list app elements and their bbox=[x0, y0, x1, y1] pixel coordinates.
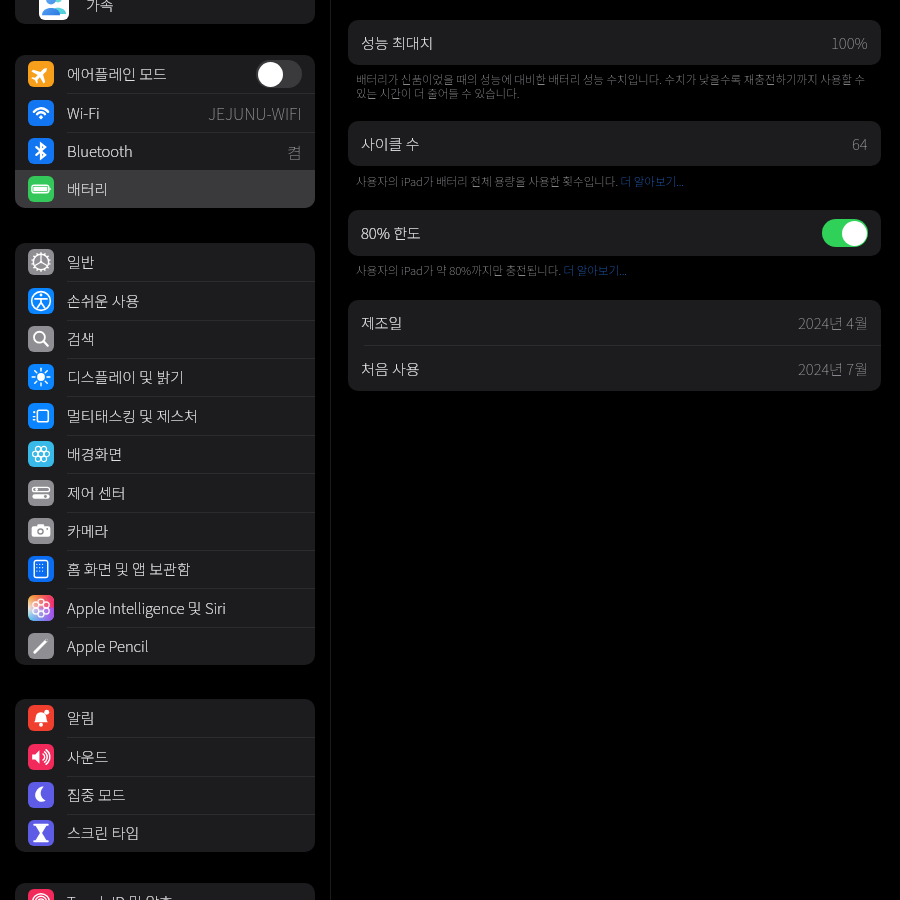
staticText: 멀티태스킹 및 제스처 bbox=[67, 405, 198, 427]
staticText: 집중 모드 bbox=[67, 784, 126, 806]
staticText: 가족 bbox=[86, 0, 114, 16]
staticText: 사이클 수 bbox=[361, 133, 420, 155]
button[interactable]: 80% 한도 bbox=[348, 210, 881, 256]
staticText: 64 bbox=[852, 133, 868, 155]
button[interactable]: 일반 bbox=[15, 243, 315, 281]
button[interactable]: 처음 사용 bbox=[348, 346, 881, 391]
staticText: 사용자의 iPad가 약 80%까지만 충전됩니다. 더 알아보기... bbox=[356, 262, 627, 279]
button[interactable]: 에어플레인 모드 bbox=[15, 55, 315, 93]
staticText: 검색 bbox=[67, 328, 95, 350]
staticText: 에어플레인 모드 bbox=[67, 63, 167, 85]
staticText: Bluetooth bbox=[67, 140, 133, 162]
button[interactable]: 멀티태스킹 및 제스처 bbox=[15, 396, 315, 435]
button[interactable]: 알림 bbox=[15, 699, 315, 737]
staticText: Wi-Fi bbox=[67, 102, 100, 124]
staticText: Apple Pencil bbox=[67, 635, 149, 657]
staticText: 사용자의 iPad가 배터리 전체 용량을 사용한 횟수입니다. 더 알아보기.… bbox=[356, 173, 685, 190]
staticText: Touch ID 및 암호 bbox=[67, 891, 174, 900]
button[interactable]: Off bbox=[256, 60, 302, 88]
button[interactable]: Bluetooth bbox=[15, 132, 315, 170]
button[interactable]: 제조일 bbox=[348, 300, 881, 345]
staticText: 배터리가 신품이었을 때의 성능에 대비한 배터리 성능 수치입니다. 수치가 … bbox=[356, 71, 876, 102]
staticText: 디스플레이 및 밝기 bbox=[67, 366, 185, 388]
button[interactable]: Wi-Fi bbox=[15, 93, 315, 132]
staticText: 알림 bbox=[67, 707, 95, 729]
staticText: 2024년 4월 bbox=[798, 312, 868, 334]
button[interactable]: 스크린 타임 bbox=[15, 814, 315, 852]
button[interactable]: 배터리 bbox=[15, 170, 315, 208]
staticText: 일반 bbox=[67, 251, 95, 273]
staticText: 켬 bbox=[287, 140, 302, 163]
button[interactable]: Touch ID 및 암호 bbox=[15, 883, 315, 900]
staticText: 홈 화면 및 앱 보관함 bbox=[67, 558, 191, 580]
button[interactable]: 성능 최대치 bbox=[348, 20, 881, 65]
button[interactable]: On bbox=[822, 219, 868, 247]
button[interactable]: Apple Pencil bbox=[15, 627, 315, 665]
button[interactable]: 집중 모드 bbox=[15, 776, 315, 814]
button[interactable]: 디스플레이 및 밝기 bbox=[15, 358, 315, 396]
staticText: Apple Intelligence 및 Siri bbox=[67, 597, 226, 619]
button[interactable]: 사이클 수 bbox=[348, 121, 881, 166]
staticText: 2024년 7월 bbox=[798, 358, 868, 380]
button[interactable]: 검색 bbox=[15, 320, 315, 358]
staticText: 제어 센터 bbox=[67, 482, 126, 504]
button[interactable]: 가족 bbox=[15, 0, 315, 24]
staticText: 배경화면 bbox=[67, 443, 123, 465]
staticText: 손쉬운 사용 bbox=[67, 290, 140, 312]
button[interactable]: 손쉬운 사용 bbox=[15, 281, 315, 320]
button[interactable]: 사운드 bbox=[15, 737, 315, 776]
staticText: 배터리 bbox=[67, 178, 109, 200]
staticText: 성능 최대치 bbox=[361, 32, 434, 54]
button[interactable]: 제어 센터 bbox=[15, 473, 315, 512]
staticText: 스크린 타임 bbox=[67, 822, 140, 844]
button[interactable]: Apple Intelligence 및 Siri bbox=[15, 588, 315, 627]
button[interactable]: 배경화면 bbox=[15, 435, 315, 473]
button[interactable]: 홈 화면 및 앱 보관함 bbox=[15, 550, 315, 588]
staticText: 사운드 bbox=[67, 746, 109, 768]
staticText: 제조일 bbox=[361, 312, 403, 334]
staticText: JEJUNU-WIFI bbox=[208, 101, 302, 124]
staticText: 처음 사용 bbox=[361, 358, 420, 380]
staticText: 100% bbox=[831, 32, 868, 54]
staticText: 카메라 bbox=[67, 520, 109, 542]
staticText: 80% 한도 bbox=[361, 222, 421, 244]
button[interactable]: 카메라 bbox=[15, 512, 315, 550]
